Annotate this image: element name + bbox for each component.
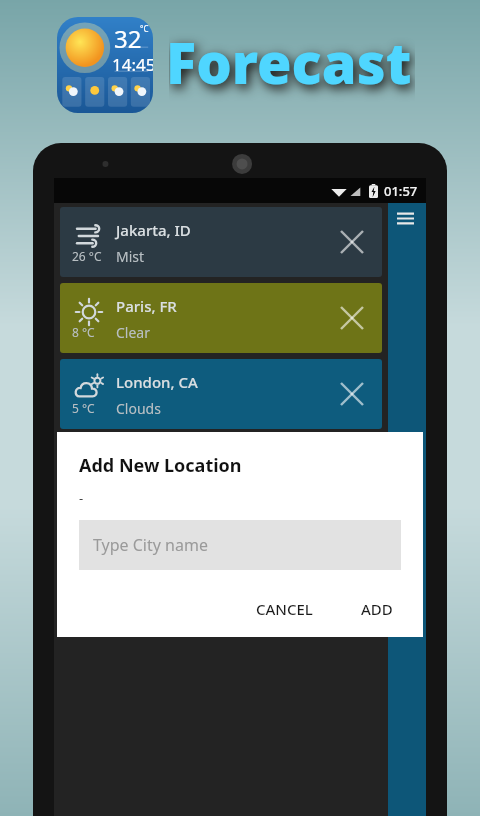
button[interactable]: Type City name — [79, 520, 401, 570]
button[interactable]: ADD — [349, 591, 405, 627]
staticText: 26 °C — [72, 248, 102, 264]
staticText: CANCEL — [256, 599, 313, 619]
staticText: ADD — [361, 599, 393, 619]
staticText: 01:57 — [384, 182, 418, 200]
button[interactable] — [60, 435, 382, 505]
button[interactable]: Remove Paris, FR — [334, 300, 370, 336]
button[interactable]: Forecast app icon — [57, 17, 153, 113]
staticText: London, CA — [116, 372, 198, 392]
button[interactable]: Jakarta, ID — [60, 207, 382, 277]
staticText: Type City name — [93, 534, 208, 556]
staticText: 14:45 — [112, 53, 153, 76]
button[interactable]: Open navigation menu — [388, 203, 426, 816]
staticText: Add New Location — [79, 453, 242, 478]
button[interactable]: Paris, FR — [60, 283, 382, 353]
staticText: Clear — [116, 323, 150, 342]
staticText: °C — [140, 23, 149, 34]
staticText: Forecast — [166, 24, 412, 100]
staticText: Paris, FR — [116, 296, 177, 316]
button[interactable]: CANCEL — [244, 591, 325, 627]
staticText: - — [79, 489, 84, 507]
button[interactable]: Remove Jakarta, ID — [334, 224, 370, 260]
button[interactable]: Remove London, CA — [334, 376, 370, 412]
staticText: 5 °C — [72, 400, 95, 416]
staticText: 32 — [114, 22, 142, 55]
staticText: Clouds — [116, 399, 161, 418]
button[interactable]: London, CA — [60, 359, 382, 429]
staticText: Jakarta, ID — [116, 220, 191, 240]
staticText: Mist — [116, 247, 145, 266]
staticText: 8 °C — [72, 324, 95, 340]
staticText: Forecast — [169, 28, 415, 104]
